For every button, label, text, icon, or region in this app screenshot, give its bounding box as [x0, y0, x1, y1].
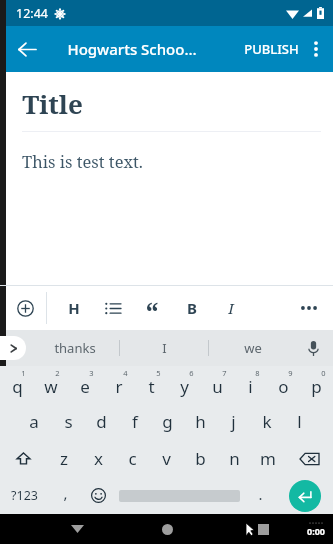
button[interactable]: a	[17, 403, 51, 440]
button[interactable]: Recents	[248, 514, 278, 544]
staticText: 0:00	[307, 525, 325, 537]
staticText: t	[148, 375, 155, 398]
staticText: v	[162, 447, 171, 470]
button[interactable]: Back	[10, 32, 44, 66]
button[interactable]: Home	[152, 514, 182, 544]
button[interactable]: we	[209, 330, 297, 366]
staticText: “	[145, 293, 159, 323]
staticText: u	[212, 375, 223, 398]
button[interactable]: Emoji	[82, 477, 115, 514]
button[interactable]: Bold	[177, 293, 207, 323]
button[interactable]: 3	[68, 366, 102, 403]
button[interactable]: 8	[234, 366, 267, 403]
button[interactable]: 6	[168, 366, 201, 403]
button[interactable]: More formatting	[293, 292, 325, 324]
staticText: I	[162, 339, 167, 357]
staticText: Hogwarts Schoo…	[67, 39, 197, 59]
staticText: 12:44	[16, 5, 48, 22]
staticText: 8	[255, 368, 260, 378]
button[interactable]: k	[250, 403, 283, 440]
button[interactable]: Heading	[59, 293, 89, 323]
button[interactable]: f	[118, 403, 151, 440]
staticText: B	[187, 298, 197, 318]
button[interactable]: Space	[115, 477, 244, 514]
button[interactable]: z	[47, 440, 81, 477]
button[interactable]: thanks	[30, 330, 119, 366]
button[interactable]: c	[115, 440, 149, 477]
staticText: c	[128, 447, 137, 470]
button[interactable]: 9	[267, 366, 300, 403]
button[interactable]: Bulleted list	[98, 293, 128, 323]
button[interactable]: ?123	[0, 477, 49, 514]
button[interactable]: 0	[300, 366, 333, 403]
staticText: z	[60, 447, 68, 470]
staticText: .	[258, 484, 263, 504]
staticText: a	[29, 410, 39, 433]
button[interactable]: 1	[0, 366, 34, 403]
staticText: n	[229, 447, 240, 470]
staticText: l	[297, 410, 302, 433]
button[interactable]: More options	[301, 34, 331, 64]
staticText: PUBLISH	[244, 40, 299, 58]
button[interactable]: j	[217, 403, 250, 440]
staticText: i	[248, 375, 253, 398]
staticText: ?123	[11, 487, 38, 504]
staticText: h	[195, 410, 206, 433]
button[interactable]: Enter	[277, 477, 333, 514]
staticText: x	[94, 447, 103, 470]
button[interactable]: Voice input	[299, 334, 327, 362]
staticText: j	[231, 410, 236, 433]
button[interactable]: 2	[34, 366, 68, 403]
button[interactable]: m	[251, 440, 285, 477]
staticText: k	[262, 410, 272, 433]
staticText: o	[278, 375, 289, 398]
button[interactable]: Title	[22, 86, 83, 121]
button[interactable]: g	[151, 403, 184, 440]
button[interactable]: 4	[102, 366, 135, 403]
staticText: Title	[22, 86, 83, 121]
staticText: 3	[89, 368, 94, 378]
staticText: 5	[156, 368, 161, 378]
staticText: 4	[123, 368, 128, 378]
button[interactable]: Back	[62, 514, 92, 544]
staticText: H	[68, 298, 80, 318]
staticText: f	[132, 410, 138, 433]
button[interactable]: d	[85, 403, 118, 440]
button[interactable]: 5	[135, 366, 168, 403]
button[interactable]: v	[149, 440, 183, 477]
button[interactable]: Backspace	[285, 440, 333, 477]
button[interactable]: h	[184, 403, 217, 440]
staticText: we	[244, 339, 262, 357]
staticText: d	[96, 410, 107, 433]
button[interactable]: Add media	[9, 292, 41, 324]
button[interactable]: Hogwarts Schoo…	[67, 39, 197, 59]
staticText: s	[64, 410, 73, 433]
button[interactable]: .	[244, 477, 277, 514]
staticText: b	[195, 447, 206, 470]
button[interactable]: Expand suggestions	[0, 336, 26, 360]
button[interactable]: Quote	[137, 293, 167, 323]
button[interactable]: 7	[201, 366, 234, 403]
staticText: 7	[222, 368, 227, 378]
button[interactable]: ,	[49, 477, 82, 514]
button[interactable]: l	[283, 403, 316, 440]
button[interactable]: n	[217, 440, 251, 477]
staticText: I	[228, 298, 234, 318]
button[interactable]: Shift	[0, 440, 47, 477]
staticText: 1	[21, 368, 26, 378]
staticText: m	[260, 447, 276, 470]
button[interactable]: b	[183, 440, 217, 477]
button[interactable]: This is test text.	[22, 150, 321, 172]
button[interactable]: x	[81, 440, 115, 477]
staticText: 9	[288, 368, 293, 378]
staticText: w	[44, 375, 58, 398]
button[interactable]: I	[120, 330, 208, 366]
button[interactable]: Italic	[216, 293, 246, 323]
staticText: 2	[55, 368, 60, 378]
staticText: p	[311, 375, 322, 398]
staticText: 0	[321, 368, 326, 378]
button[interactable]: s	[51, 403, 85, 440]
staticText: thanks	[54, 339, 96, 357]
staticText: 6	[189, 368, 194, 378]
button[interactable]: PUBLISH	[240, 32, 303, 66]
